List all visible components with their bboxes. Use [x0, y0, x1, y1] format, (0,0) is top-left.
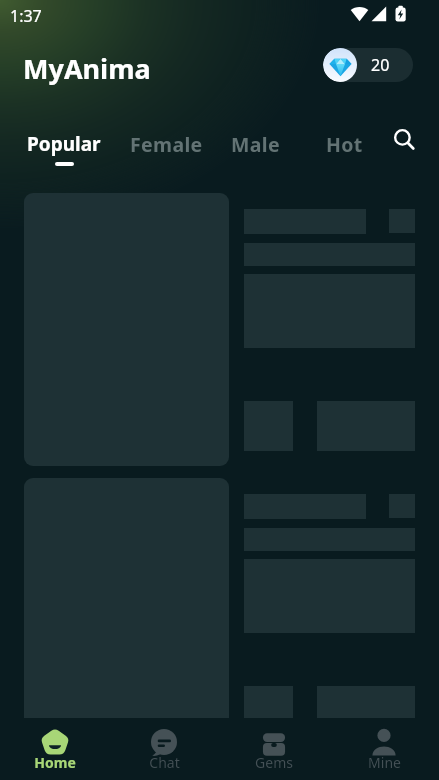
staticText: Gems: [255, 753, 293, 772]
staticText: Home: [34, 753, 76, 772]
staticText: Female: [130, 131, 203, 158]
staticText: Chat: [149, 753, 180, 772]
staticText: 1:37: [10, 5, 42, 27]
button[interactable]: Male: [231, 131, 280, 163]
button[interactable]: Female: [130, 131, 203, 163]
staticText: 20: [371, 54, 390, 76]
button[interactable]: Search: [388, 123, 420, 155]
button[interactable]: 20: [323, 48, 413, 82]
button[interactable]: Chat: [109, 718, 219, 775]
staticText: Popular: [27, 131, 101, 157]
button[interactable]: Mine: [329, 718, 439, 775]
button[interactable]: Hot: [326, 131, 363, 163]
staticText: MyAnima: [23, 50, 151, 87]
button[interactable]: Gems: [219, 718, 329, 775]
staticText: Hot: [326, 131, 363, 158]
button[interactable]: Home: [0, 718, 109, 775]
button[interactable]: Popular: [27, 131, 101, 166]
staticText: Mine: [368, 753, 401, 772]
staticText: Male: [231, 131, 280, 158]
